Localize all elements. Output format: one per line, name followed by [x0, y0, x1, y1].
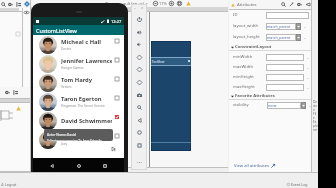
button[interactable]: Home [72, 159, 86, 172]
staticText: ConstraintLayout [235, 44, 272, 50]
staticText: – [304, 35, 306, 40]
staticText: View all attributes [234, 163, 270, 169]
staticText: maxHeight [233, 84, 255, 90]
button[interactable]: Select Micheal c Hall [113, 35, 120, 54]
staticText: Event Log [291, 182, 308, 187]
button[interactable]: minHeight [229, 72, 312, 82]
button[interactable]: View all attributes [229, 162, 312, 170]
button[interactable]: Settings [5, 90, 10, 95]
button[interactable]: Palette [24, 1, 30, 7]
button[interactable]: Favorite Attributes [229, 91, 312, 100]
button[interactable]: Matt leblanc [33, 130, 124, 149]
staticText: 17% [159, 1, 167, 6]
button[interactable]: ID [229, 10, 312, 20]
button[interactable]: Volume up [131, 26, 147, 39]
staticText: TextView [152, 60, 165, 64]
button[interactable]: Select David Schwimmer [113, 111, 120, 130]
staticText: ID [233, 12, 238, 18]
button[interactable]: Back [131, 114, 147, 127]
staticText: Actor Name:David [47, 132, 76, 137]
button[interactable]: Select Tom Hardy [113, 73, 120, 92]
button[interactable]: Search [1, 2, 6, 7]
staticText: layout_height [233, 34, 260, 40]
staticText: match_parent [267, 24, 291, 29]
button[interactable]: Recents [98, 159, 112, 172]
staticText: Hunger Games [61, 66, 84, 70]
button[interactable]: Sort [289, 2, 294, 7]
staticText: Theme [105, 1, 118, 6]
button[interactable]: Power [131, 13, 147, 26]
button[interactable]: Settings [8, 2, 13, 7]
staticText: – [307, 85, 309, 90]
staticText: minWidth [233, 54, 253, 60]
staticText: match_parent [267, 35, 291, 40]
staticText: Taron Egerton [61, 95, 102, 103]
staticText: visibility [233, 102, 249, 108]
staticText: – [134, 5, 136, 10]
staticText: – [304, 24, 306, 29]
staticText: Micheal c Hall [61, 38, 101, 46]
staticText: minHeight [233, 74, 254, 80]
button[interactable]: Collapse [305, 2, 310, 7]
button[interactable]: Component tree [16, 2, 21, 7]
button[interactable]: More options [131, 156, 147, 169]
staticText: Attributes [237, 2, 257, 8]
staticText: – [309, 103, 311, 108]
staticText: ✕ [141, 6, 144, 9]
button[interactable]: Settings [297, 2, 302, 7]
staticText: Dexter [61, 47, 72, 51]
button[interactable]: Tom Hardy [33, 73, 124, 92]
button[interactable]: Volume down [131, 38, 147, 51]
staticText: CustomListView [36, 27, 77, 34]
staticText: Joey [61, 142, 68, 146]
button[interactable]: Zoom [131, 101, 147, 114]
button[interactable]: minWidth [229, 52, 312, 62]
button[interactable]: Taron Egerton [33, 92, 124, 111]
button[interactable]: Micheal c Hall [33, 35, 124, 54]
button[interactable]: maxHeight [229, 82, 312, 92]
button[interactable]: Camera [131, 89, 147, 102]
button[interactable]: Select Taron Egerton [113, 92, 120, 111]
button[interactable]: Overview [131, 139, 147, 152]
staticText: – [307, 75, 309, 80]
staticText: none [268, 103, 277, 108]
button[interactable]: maxWidth [229, 62, 312, 72]
staticText: ault (en-us) [123, 1, 145, 6]
staticText: ▾ [146, 2, 148, 5]
staticText: Venom [61, 85, 72, 89]
button[interactable]: Expand tree [13, 90, 18, 95]
staticText: Kingsman: The Secret Service [61, 104, 105, 108]
button[interactable]: Jennifer Lawrence [33, 54, 124, 73]
button[interactable]: layout_height [229, 32, 312, 42]
staticText: Jennifer Lawrence [61, 57, 112, 65]
staticText: Device File Explorer [313, 100, 318, 132]
button[interactable]: visibility [229, 100, 312, 110]
button[interactable]: Event Log [287, 182, 308, 187]
button[interactable]: CustomListView [33, 25, 124, 35]
staticText: David Schwimmer [61, 117, 112, 125]
staticText: Schwimmer,movies:Tv,love:Friends [47, 138, 102, 141]
button[interactable]: David Schwimmer [33, 111, 124, 130]
button[interactable]: Take screenshot [131, 76, 147, 89]
button[interactable]: Search [281, 2, 286, 7]
staticText: layout_width [233, 23, 259, 29]
button[interactable]: Select Jennifer Lawrence [113, 54, 120, 73]
staticText: maxWidth [233, 64, 254, 70]
button[interactable]: Select Matt leblanc [113, 130, 120, 149]
button[interactable]: Rotate right [131, 63, 147, 76]
staticText: 12:27 [111, 19, 122, 24]
button[interactable]: Back [45, 159, 59, 172]
button[interactable]: ConstraintLayout [229, 42, 312, 51]
staticText: – [307, 55, 309, 60]
staticText: 4: Logcat [1, 182, 17, 187]
staticText: Favorite Attributes [235, 93, 275, 99]
staticText: Tom Hardy [61, 76, 93, 84]
button[interactable]: layout_width [229, 21, 312, 31]
button[interactable]: Home [131, 126, 147, 139]
staticText: Matt leblanc [61, 133, 98, 141]
staticText: – [307, 65, 309, 70]
button[interactable]: Rotate left [131, 51, 147, 64]
